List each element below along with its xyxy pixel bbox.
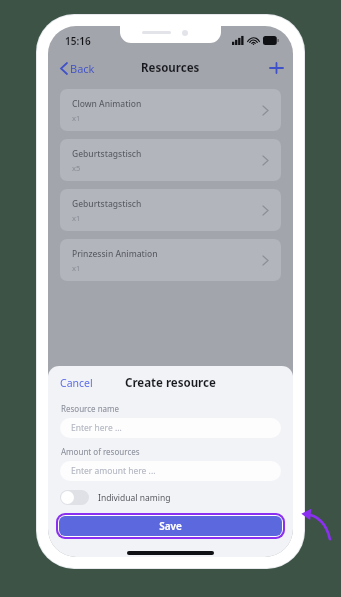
button[interactable]: Add resource bbox=[260, 53, 293, 83]
button[interactable]: Prinzessin Animation bbox=[60, 239, 281, 281]
button[interactable]: Enter here ... bbox=[60, 418, 281, 438]
staticText: Geburtstagstisch bbox=[72, 198, 142, 210]
button[interactable]: Cancel bbox=[48, 372, 101, 394]
staticText: Create resource bbox=[125, 375, 216, 391]
staticText: 15:16 bbox=[65, 34, 91, 48]
staticText: Prinzessin Animation bbox=[72, 248, 158, 260]
button[interactable]: Geburtstagstisch bbox=[60, 189, 281, 231]
staticText: Individual naming bbox=[98, 492, 171, 504]
button[interactable]: Back bbox=[48, 57, 103, 80]
staticText: Resources bbox=[141, 60, 200, 76]
staticText: Resource name bbox=[61, 403, 120, 414]
staticText: Enter amount here ... bbox=[71, 465, 156, 477]
staticText: x1 bbox=[72, 263, 81, 273]
button[interactable]: Geburtstagstisch bbox=[60, 139, 281, 181]
button[interactable]: Save bbox=[56, 513, 285, 539]
staticText: Amount of resources bbox=[61, 446, 140, 457]
button[interactable]: Individual naming bbox=[60, 490, 171, 505]
button[interactable]: Enter amount here ... bbox=[60, 461, 281, 481]
button[interactable]: Clown Animation bbox=[60, 89, 281, 131]
staticText: x1 bbox=[72, 113, 81, 123]
staticText: Enter here ... bbox=[71, 422, 122, 434]
staticText: Clown Animation bbox=[72, 98, 142, 110]
staticText: x1 bbox=[72, 213, 81, 223]
staticText: Back bbox=[70, 61, 95, 76]
staticText: Geburtstagstisch bbox=[72, 148, 142, 160]
staticText: x5 bbox=[72, 163, 81, 173]
staticText: Save bbox=[159, 519, 182, 533]
